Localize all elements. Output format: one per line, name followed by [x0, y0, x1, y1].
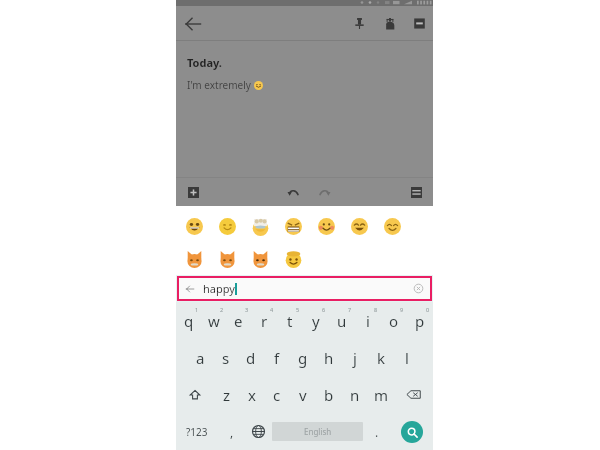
button[interactable]: j — [342, 339, 368, 376]
button[interactable]: Shift — [176, 376, 214, 413]
button[interactable]: Emoji — [244, 243, 277, 275]
button[interactable]: s — [213, 339, 238, 376]
staticText: a — [196, 348, 205, 368]
staticText: Today. — [187, 55, 222, 70]
staticText: z — [223, 385, 231, 405]
button[interactable]: Emoji — [277, 210, 310, 243]
button[interactable]: Emoji — [277, 243, 310, 275]
button[interactable]: , — [218, 413, 245, 450]
staticText: 7 — [348, 306, 352, 313]
staticText: 8 — [374, 306, 378, 313]
button[interactable]: z — [214, 376, 239, 413]
button[interactable]: Back — [182, 13, 204, 35]
button[interactable]: c — [264, 376, 290, 413]
button[interactable]: Pin — [348, 12, 371, 35]
staticText: 5 — [296, 306, 300, 313]
button[interactable]: n — [342, 376, 368, 413]
button[interactable]: Backspace — [394, 376, 433, 413]
staticText: o — [389, 311, 399, 331]
staticText: i — [366, 311, 370, 331]
staticText: b — [324, 385, 334, 405]
staticText: x — [248, 385, 256, 405]
button[interactable]: Search — [401, 421, 423, 443]
staticText: 4 — [270, 306, 274, 313]
button[interactable]: ?123 — [176, 413, 218, 450]
button[interactable]: v — [290, 376, 316, 413]
button[interactable]: i — [355, 302, 381, 339]
button[interactable]: u — [329, 302, 355, 339]
button[interactable]: k — [368, 339, 394, 376]
staticText: . — [375, 424, 379, 440]
button[interactable]: Emoji — [178, 210, 211, 243]
staticText: y — [312, 311, 320, 331]
button[interactable]: Emoji — [211, 210, 244, 243]
button[interactable]: Emoji — [178, 243, 211, 275]
staticText: u — [337, 311, 347, 331]
staticText: c — [273, 385, 281, 405]
button[interactable]: . — [363, 413, 390, 450]
button[interactable]: q — [176, 302, 201, 339]
staticText: d — [246, 348, 256, 368]
button[interactable]: Emoji — [376, 210, 409, 243]
button[interactable]: English — [272, 422, 363, 441]
button[interactable]: Clear — [412, 282, 425, 295]
button[interactable]: t — [277, 302, 303, 339]
staticText: 9 — [400, 306, 404, 313]
staticText: s — [222, 348, 230, 368]
button[interactable]: m — [368, 376, 394, 413]
button[interactable]: More options — [405, 181, 427, 203]
staticText: 3 — [245, 306, 249, 313]
button[interactable]: a — [188, 339, 213, 376]
staticText: ?123 — [186, 425, 208, 439]
staticText: I'm extremely — [187, 78, 254, 92]
button[interactable]: Emoji — [310, 210, 343, 243]
button[interactable]: Redo — [313, 180, 337, 204]
staticText: n — [350, 385, 360, 405]
button[interactable]: Emoji — [343, 210, 376, 243]
staticText: r — [261, 311, 268, 331]
staticText: j — [353, 348, 357, 368]
staticText: English — [304, 426, 332, 437]
button[interactable]: h — [316, 339, 342, 376]
button[interactable]: d — [238, 339, 264, 376]
button[interactable]: Archive — [408, 12, 431, 35]
button[interactable]: r — [251, 302, 277, 339]
button[interactable]: Back — [179, 278, 430, 299]
staticText: 1 — [195, 306, 199, 313]
staticText: l — [405, 348, 409, 368]
button[interactable]: Language — [245, 413, 272, 450]
button[interactable]: p — [407, 302, 433, 339]
button[interactable]: Undo — [281, 180, 305, 204]
button[interactable]: Back — [183, 282, 197, 296]
button[interactable]: o — [381, 302, 407, 339]
staticText: 0 — [426, 306, 430, 313]
staticText: 2 — [220, 306, 224, 313]
button[interactable]: b — [316, 376, 342, 413]
staticText: happy — [203, 281, 235, 296]
button[interactable]: y — [303, 302, 329, 339]
staticText: p — [415, 311, 425, 331]
button[interactable]: Add — [182, 181, 204, 203]
button[interactable]: e — [226, 302, 251, 339]
button[interactable]: Emoji — [211, 243, 244, 275]
button[interactable]: x — [239, 376, 264, 413]
staticText: , — [230, 424, 234, 440]
staticText: v — [299, 385, 307, 405]
staticText: h — [324, 348, 334, 368]
staticText: e — [234, 311, 243, 331]
staticText: m — [374, 385, 389, 405]
button[interactable]: w — [201, 302, 226, 339]
staticText: k — [377, 348, 386, 368]
button[interactable]: Reminder — [378, 12, 401, 35]
staticText: 6 — [322, 306, 326, 313]
button[interactable]: l — [394, 339, 420, 376]
staticText: w — [208, 311, 220, 331]
button[interactable]: g — [290, 339, 316, 376]
button[interactable]: f — [264, 339, 290, 376]
staticText: t — [287, 311, 293, 331]
staticText: f — [274, 348, 280, 368]
button[interactable]: Emoji — [244, 210, 277, 243]
staticText: g — [298, 348, 308, 368]
staticText: q — [184, 311, 194, 331]
